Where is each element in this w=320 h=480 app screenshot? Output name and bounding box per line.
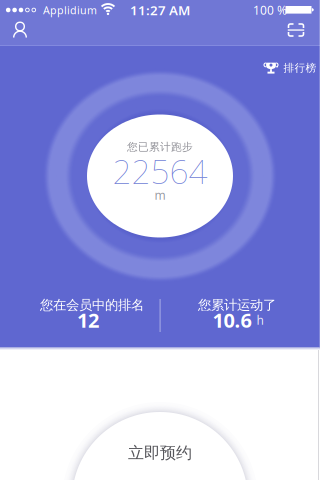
staticText: 100 % [253,2,287,18]
staticText: 11:27 AM [130,1,190,19]
staticText: 10.6 [212,307,251,333]
button[interactable]: Profile [5,16,35,46]
staticText: 排行榜 [283,61,316,74]
button[interactable]: Scan [281,15,311,45]
staticText: h [256,312,263,328]
staticText: 您累计运动了 [198,297,276,313]
staticText: 22564 [112,149,207,193]
staticText: Applidium [43,3,97,17]
staticText: 12 [77,307,99,333]
staticText: 您在会员中的排名 [40,297,144,313]
staticText: 立即预约 [128,443,192,463]
staticText: 您已累计跑步 [127,140,193,153]
button[interactable]: 立即预约 [72,412,248,480]
staticText: m [154,187,165,203]
button[interactable]: 排行榜 [263,61,316,74]
